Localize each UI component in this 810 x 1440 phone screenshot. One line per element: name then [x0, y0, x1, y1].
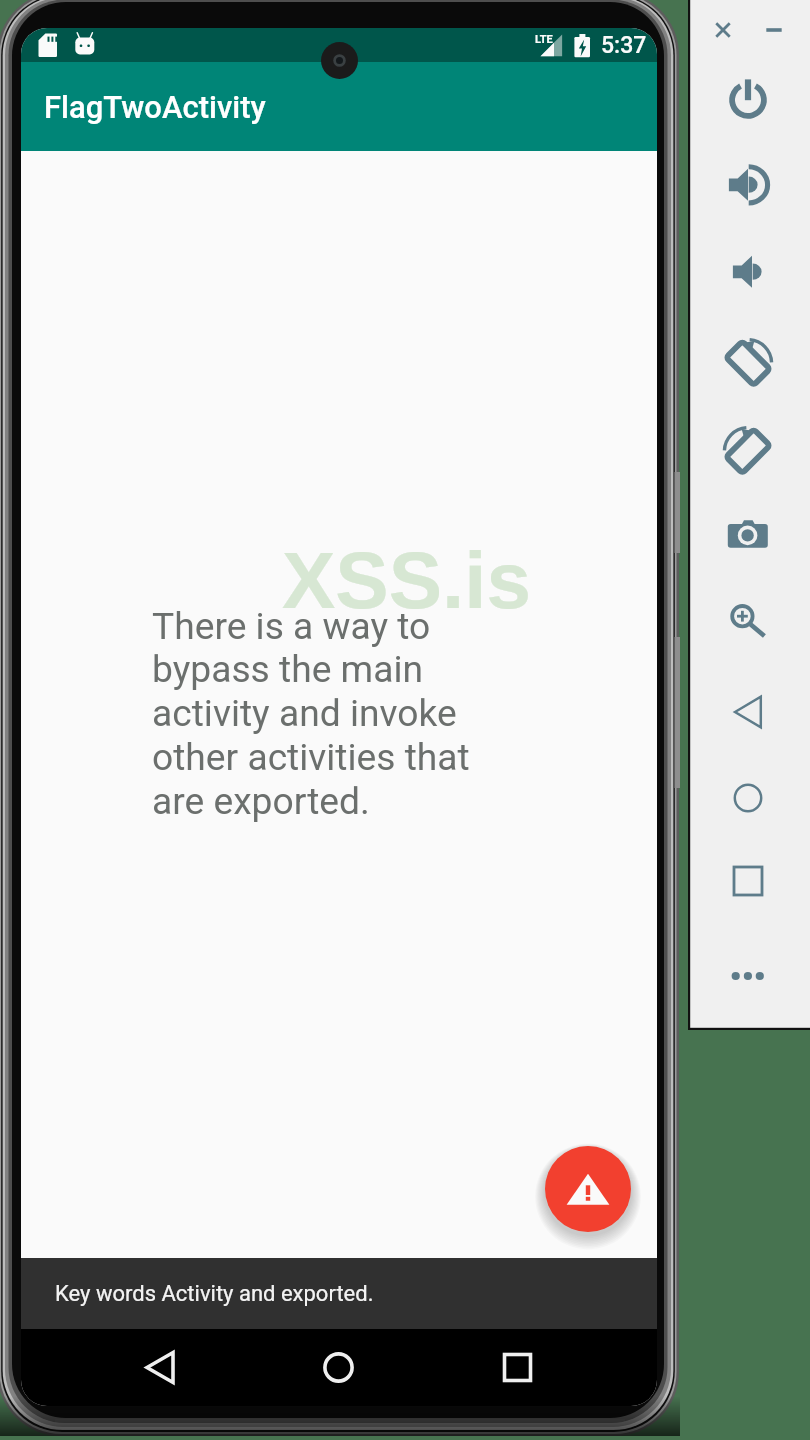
- button[interactable]: Rotate right: [728, 429, 768, 469]
- button[interactable]: Warning: [545, 1146, 631, 1232]
- button[interactable]: FlagTwoActivity: [21, 62, 657, 151]
- button[interactable]: Volume up: [728, 165, 768, 205]
- staticText: Key words Activity and exported.: [55, 1281, 374, 1307]
- button[interactable]: Recents: [462, 1329, 574, 1406]
- staticText: 5:37: [601, 32, 647, 59]
- button[interactable]: Overview: [728, 861, 768, 901]
- button[interactable]: Home: [283, 1329, 395, 1406]
- staticText: FlagTwoActivity: [44, 89, 266, 125]
- staticText: There is a way to bypass the main activi…: [152, 604, 479, 824]
- button[interactable]: Volume down: [728, 252, 768, 292]
- button[interactable]: More: [728, 956, 768, 996]
- button[interactable]: Rotate left: [728, 341, 768, 381]
- staticText: LTE: [535, 33, 553, 46]
- button[interactable]: Back: [104, 1329, 216, 1406]
- button[interactable]: Minimize: [762, 18, 786, 42]
- button[interactable]: Back: [728, 692, 768, 732]
- button[interactable]: Zoom: [728, 602, 768, 642]
- button[interactable]: Take screenshot: [728, 516, 768, 556]
- button[interactable]: Close: [711, 18, 735, 42]
- staticText: XSS.is: [282, 536, 532, 625]
- button[interactable]: Home: [728, 778, 768, 818]
- button[interactable]: Power: [728, 78, 768, 118]
